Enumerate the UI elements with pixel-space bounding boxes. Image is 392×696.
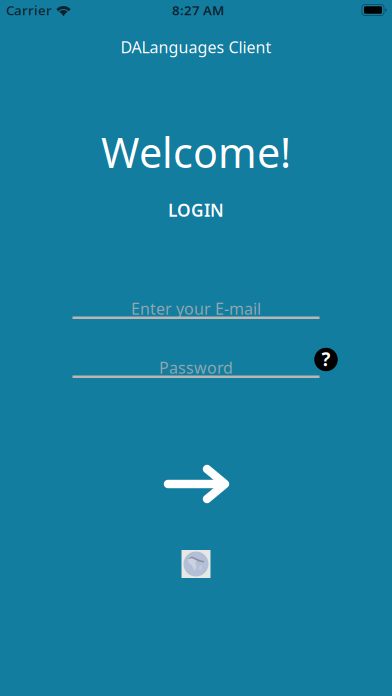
button[interactable]: Enter your E-mail bbox=[72, 297, 319, 321]
staticText: Enter your E-mail bbox=[131, 298, 261, 319]
staticText: LOGIN bbox=[168, 198, 224, 221]
staticText: ? bbox=[321, 347, 330, 371]
staticText: Carrier bbox=[6, 1, 52, 19]
staticText: Password bbox=[159, 357, 233, 378]
staticText: Welcome! bbox=[101, 125, 291, 179]
staticText: DALanguages Client bbox=[120, 36, 271, 58]
button[interactable]: Password bbox=[72, 356, 319, 380]
button[interactable]: Sign in bbox=[163, 464, 233, 503]
staticText: 8:27 AM bbox=[172, 1, 224, 19]
button[interactable]: Help bbox=[311, 344, 341, 374]
